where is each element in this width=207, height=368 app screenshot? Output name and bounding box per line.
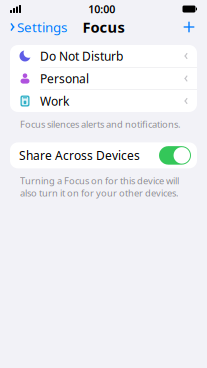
staticText: Personal	[40, 70, 89, 86]
button[interactable]: Add Focus	[175, 17, 203, 37]
staticText: Settings	[17, 18, 67, 36]
button[interactable]: Settings	[4, 14, 73, 40]
button[interactable]: Do Not Disturb	[10, 45, 197, 67]
button[interactable]: Personal	[10, 67, 197, 89]
staticText: 10:00	[88, 2, 115, 16]
staticText: Focus	[82, 17, 124, 37]
staticText: Focus silences alerts and notifications.	[20, 118, 181, 130]
button[interactable]: Work	[10, 90, 197, 112]
button[interactable]: Share Across Devices	[10, 142, 197, 168]
staticText: Share Across Devices	[19, 147, 140, 163]
staticText: Turning a Focus on for this device will …	[20, 174, 179, 199]
staticText: Do Not Disturb	[40, 48, 123, 64]
staticText: Work	[40, 93, 69, 109]
